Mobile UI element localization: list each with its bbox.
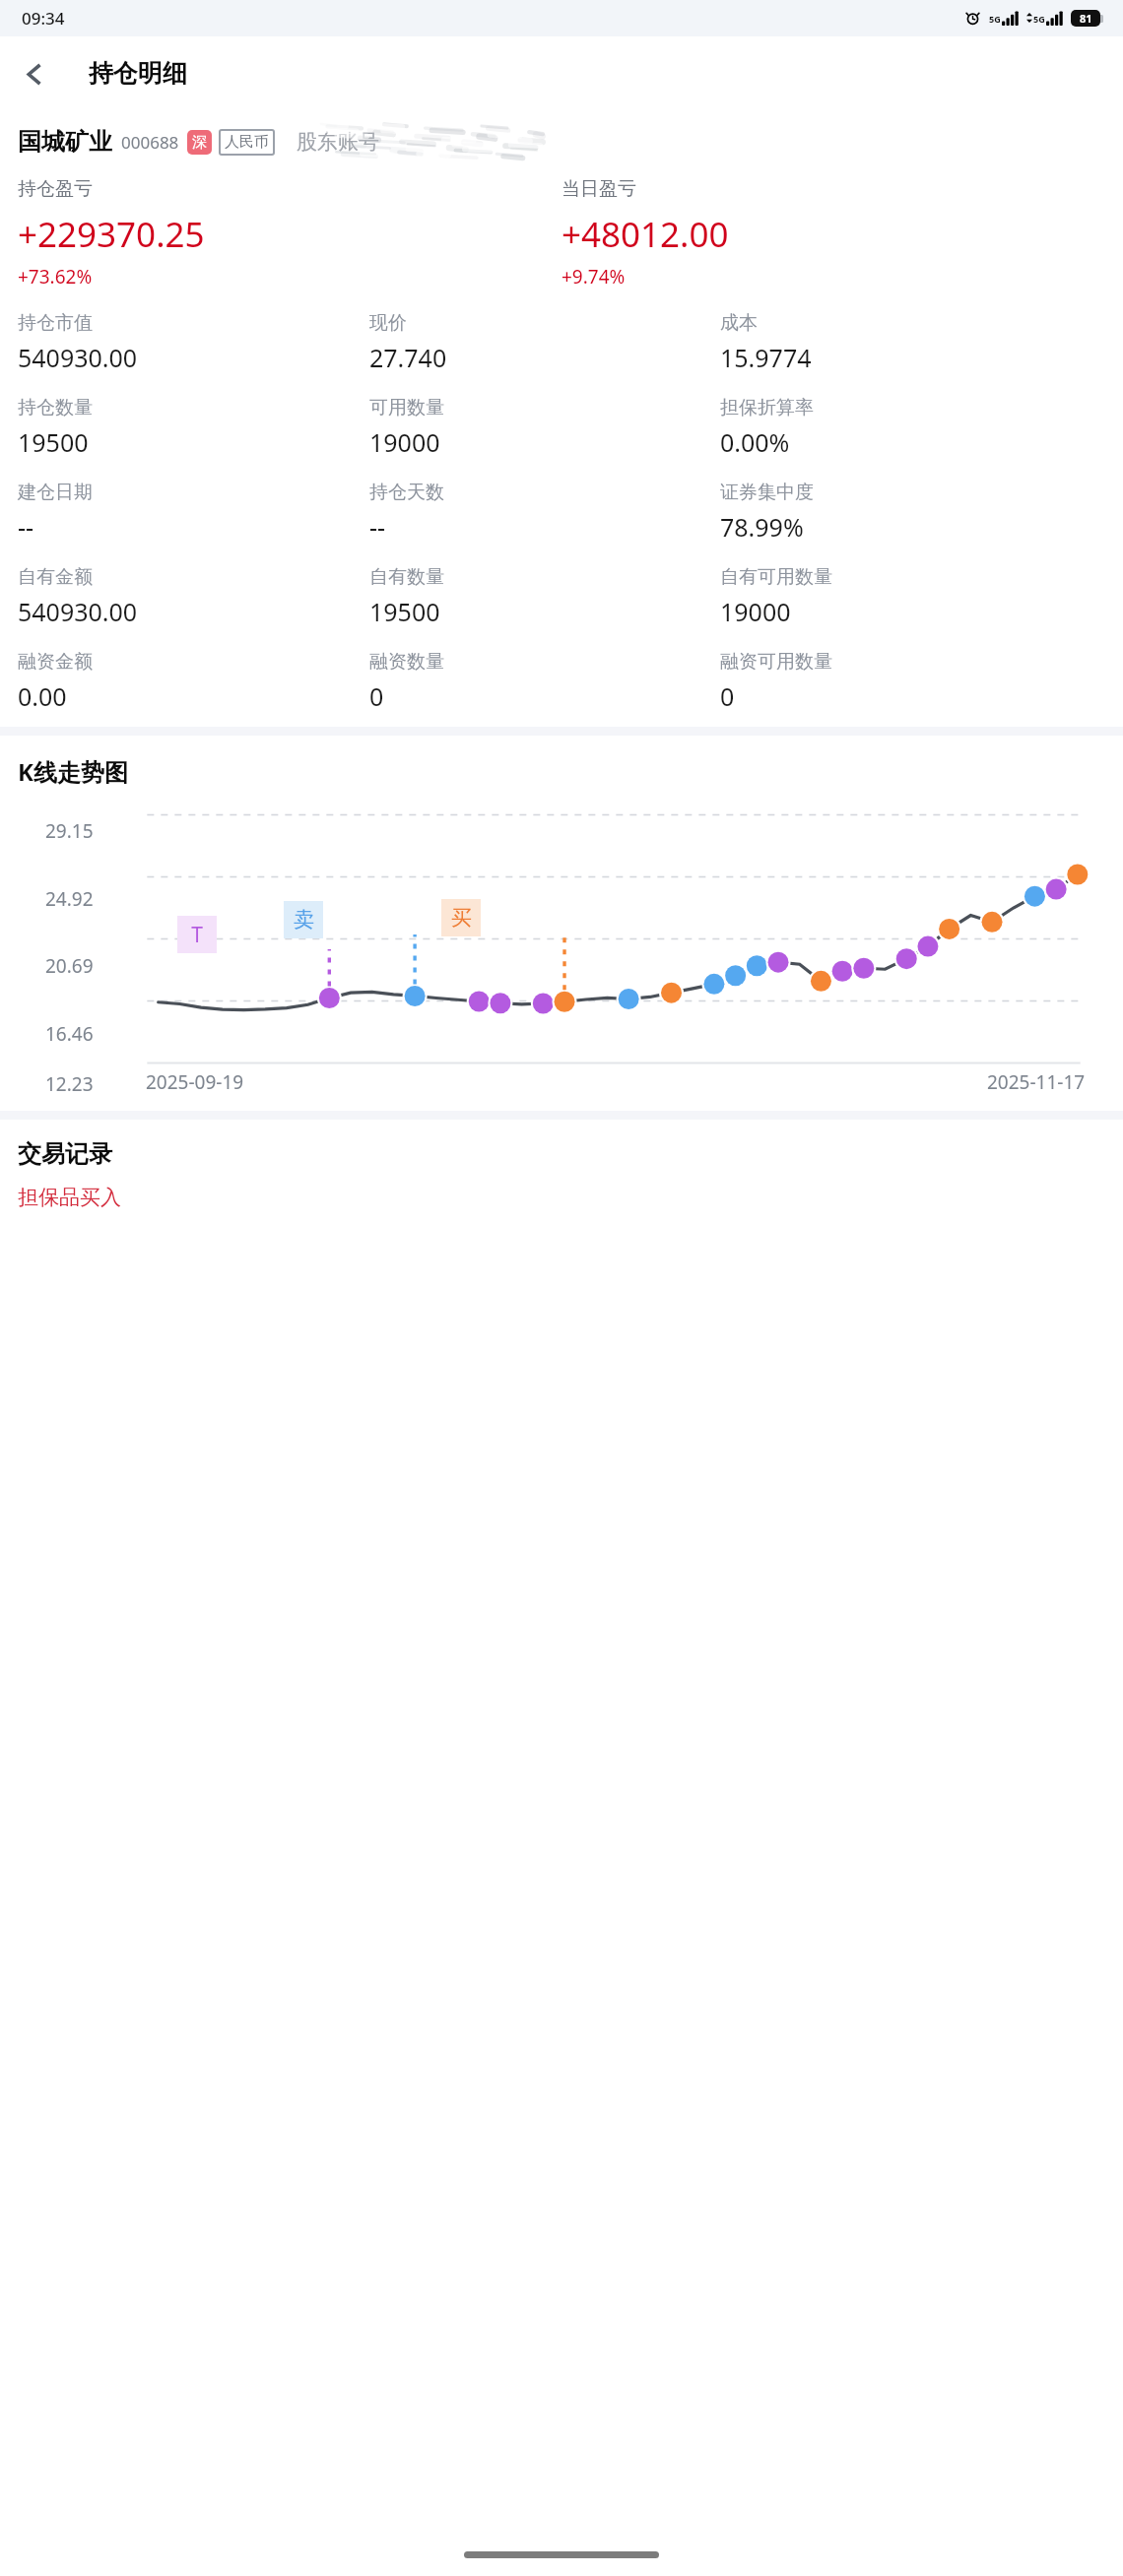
button[interactable]: Back — [6, 46, 61, 101]
staticText: -- — [18, 510, 34, 544]
button[interactable]: 担保品买入 — [18, 1185, 121, 1210]
staticText: 540930.00 — [18, 595, 138, 628]
staticText: 19000 — [369, 425, 440, 459]
staticText: 卖 — [294, 907, 314, 933]
staticText: +73.62% — [18, 264, 93, 290]
staticText: 16.46 — [45, 1021, 94, 1047]
staticText: +48012.00 — [561, 211, 729, 258]
staticText: 2025-09-19 — [146, 1069, 244, 1095]
staticText: +229370.25 — [18, 211, 205, 258]
staticText: 交易记录 — [18, 1139, 112, 1169]
staticText: 深 — [192, 133, 207, 152]
staticText: 19500 — [18, 425, 89, 459]
staticText: 融资金额 — [18, 650, 93, 674]
staticText: 0.00% — [720, 425, 790, 459]
staticText: 股东账号 — [297, 129, 379, 155]
staticText: 现价 — [369, 311, 407, 335]
staticText: 人民币 — [225, 133, 269, 152]
staticText: T — [191, 921, 203, 949]
staticText: 0 — [720, 679, 735, 713]
staticText: 09:34 — [22, 7, 65, 30]
staticText: 27.740 — [369, 341, 447, 374]
staticText: 78.99% — [720, 510, 804, 544]
staticText: 81 — [1080, 11, 1092, 26]
staticText: 29.15 — [45, 818, 94, 844]
staticText: 证券集中度 — [720, 481, 814, 504]
staticText: 19000 — [720, 595, 791, 628]
staticText: +9.74% — [561, 264, 626, 290]
staticText: 融资数量 — [369, 650, 444, 674]
staticText: 当日盈亏 — [561, 177, 636, 201]
staticText: 持仓天数 — [369, 481, 444, 504]
staticText: 24.92 — [45, 886, 94, 912]
staticText: 5G — [1033, 13, 1045, 25]
staticText: 持仓盈亏 — [18, 177, 93, 201]
staticText: 可用数量 — [369, 396, 444, 419]
staticText: 5G — [989, 13, 1001, 25]
staticText: 0 — [369, 679, 384, 713]
staticText: 国城矿业 — [18, 127, 112, 157]
staticText: 2025-11-17 — [987, 1069, 1086, 1095]
staticText: 持仓明细 — [89, 58, 187, 89]
staticText: 12.23 — [45, 1071, 94, 1097]
staticText: 担保折算率 — [720, 396, 814, 419]
staticText: -- — [369, 510, 386, 544]
staticText: 持仓数量 — [18, 396, 93, 419]
staticText: 成本 — [720, 311, 758, 335]
staticText: 000688 — [121, 131, 179, 154]
staticText: 540930.00 — [18, 341, 138, 374]
staticText: 自有金额 — [18, 565, 93, 589]
staticText: 19500 — [369, 595, 440, 628]
staticText: 15.9774 — [720, 341, 812, 374]
staticText: 融资可用数量 — [720, 650, 832, 674]
staticText: 20.69 — [45, 953, 94, 979]
staticText: 持仓市值 — [18, 311, 93, 335]
staticText: K线走势图 — [18, 755, 128, 788]
staticText: 自有可用数量 — [720, 565, 832, 589]
staticText: 自有数量 — [369, 565, 444, 589]
staticText: 建仓日期 — [18, 481, 93, 504]
staticText: 买 — [451, 905, 472, 931]
staticText: 0.00 — [18, 679, 67, 713]
